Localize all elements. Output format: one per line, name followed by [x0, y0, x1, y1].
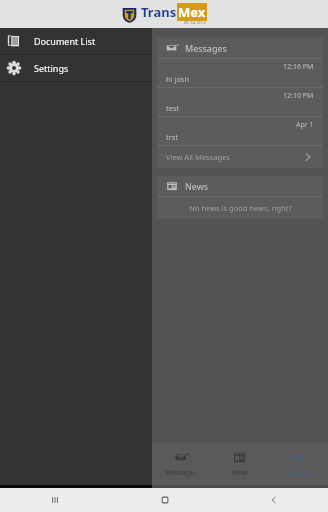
- staticText: Trans: [141, 3, 177, 21]
- staticText: Apr 1: [296, 120, 314, 130]
- staticText: hi josh: [166, 74, 190, 84]
- staticText: 12:10 PM: [283, 91, 314, 101]
- staticText: INC. S.A. DE C.V.: [184, 21, 207, 25]
- staticText: 12:16 PM: [283, 62, 314, 72]
- button[interactable]: 12:16 PM: [157, 59, 323, 87]
- staticText: test: [166, 103, 180, 113]
- button[interactable]: Message..: [152, 443, 210, 485]
- staticText: Settings: [34, 62, 69, 74]
- button[interactable]: Settings: [0, 55, 152, 81]
- staticText: trst: [166, 132, 179, 142]
- staticText: Messages: [185, 42, 227, 54]
- staticText: Message..: [165, 468, 198, 478]
- button[interactable]: Apr 1: [157, 117, 323, 145]
- button[interactable]: More: [269, 443, 328, 485]
- staticText: Document List: [34, 35, 96, 47]
- staticText: View All Messages: [166, 152, 230, 162]
- staticText: No news is good news, right?: [189, 203, 292, 213]
- button[interactable]: News: [210, 443, 269, 485]
- button[interactable]: Document List: [0, 28, 152, 54]
- button[interactable]: Back: [219, 488, 328, 512]
- button[interactable]: 12:10 PM: [157, 88, 323, 116]
- staticText: More: [290, 468, 308, 478]
- staticText: News: [231, 468, 249, 478]
- button[interactable]: Recents: [0, 488, 110, 512]
- button[interactable]: View All Messages: [157, 146, 323, 168]
- staticText: Mex: [178, 3, 206, 21]
- staticText: News: [185, 180, 209, 192]
- button[interactable]: Home: [110, 488, 219, 512]
